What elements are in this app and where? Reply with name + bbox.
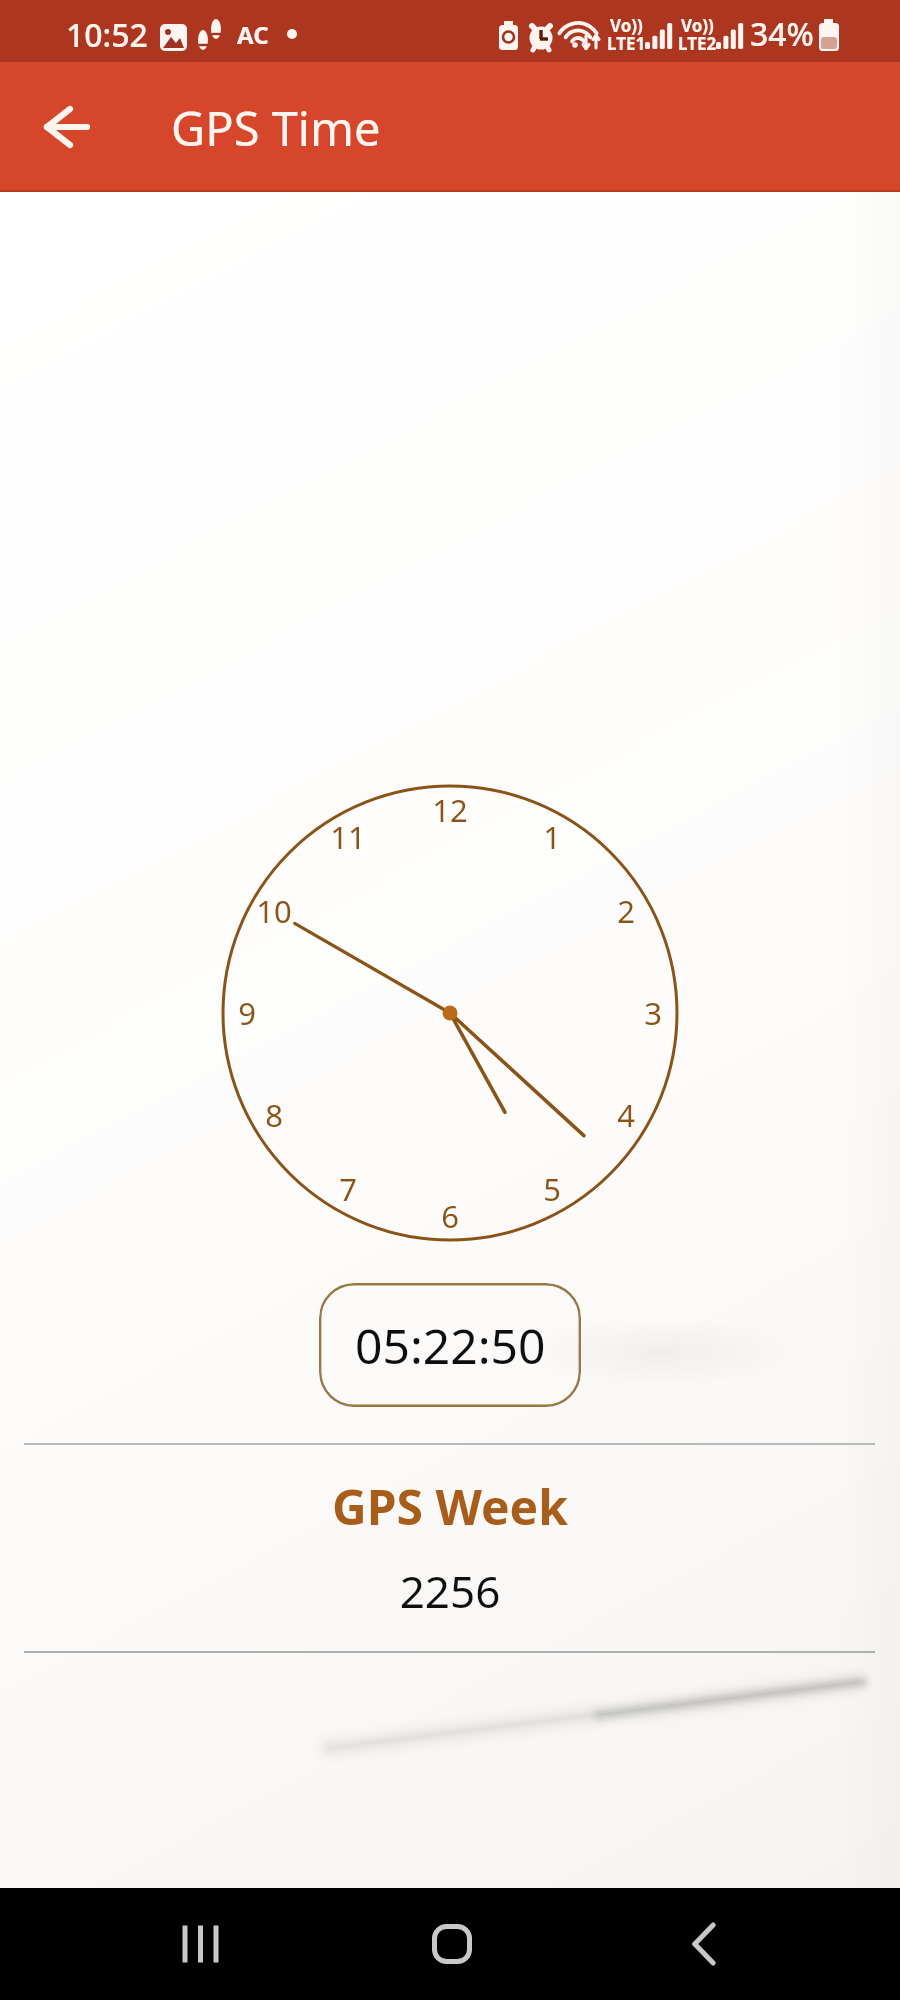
staticText: 5 xyxy=(543,1168,561,1210)
button[interactable]: Analog clock xyxy=(219,782,681,1244)
staticText: LTE2 xyxy=(678,32,717,55)
staticText: 12 xyxy=(432,789,468,831)
staticText: AC xyxy=(237,18,269,51)
button[interactable]: Back xyxy=(25,87,105,167)
staticText: 1 xyxy=(543,816,561,858)
staticText: GPS Week xyxy=(0,1474,900,1539)
staticText: 10 xyxy=(256,890,292,932)
button[interactable]: Back xyxy=(666,1904,746,1984)
staticText: 05:22:50 xyxy=(355,1313,546,1378)
staticText: 3 xyxy=(644,992,662,1034)
staticText: 6 xyxy=(441,1195,459,1237)
staticText: 4 xyxy=(617,1094,635,1136)
staticText: 11 xyxy=(330,816,366,858)
staticText: LTE1 xyxy=(607,32,646,55)
staticText: 2256 xyxy=(0,1561,900,1621)
staticText: Vo)) xyxy=(681,14,714,37)
staticText: GPS Time xyxy=(171,96,381,160)
staticText: 8 xyxy=(265,1094,283,1136)
button[interactable]: Home xyxy=(412,1904,492,1984)
staticText: 10:52 xyxy=(66,13,148,57)
staticText: 34% xyxy=(750,12,814,56)
button[interactable]: GPS Week xyxy=(0,1444,900,1651)
staticText: Vo)) xyxy=(610,14,643,37)
button[interactable]: 05:22:50 xyxy=(319,1283,581,1407)
staticText: 2 xyxy=(617,890,635,932)
button[interactable]: Recents xyxy=(162,1904,242,1984)
staticText: 9 xyxy=(238,992,256,1034)
staticText: 7 xyxy=(339,1168,357,1210)
